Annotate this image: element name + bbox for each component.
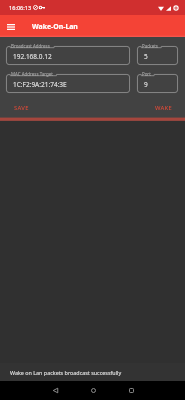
button[interactable]: Wake on Lan packets broadcast successful… [0, 363, 185, 381]
button[interactable]: Open navigation menu [0, 16, 22, 37]
staticText: 5 [144, 52, 148, 61]
button[interactable]: Home [81, 381, 105, 400]
staticText: Wake on Lan packets broadcast successful… [10, 369, 122, 376]
button[interactable]: Recent apps [119, 381, 143, 400]
staticText: WAKE [155, 104, 173, 112]
button[interactable]: 1C:F2:9A:21:74:3E [6, 74, 130, 93]
staticText: 9 [144, 80, 148, 89]
staticText: Port [142, 71, 151, 77]
staticText: SAVE [14, 104, 29, 112]
staticText: Wake-On-Lan [32, 22, 78, 31]
button[interactable]: 9 [137, 74, 178, 93]
button[interactable]: WAKE [149, 101, 179, 115]
button[interactable]: SAVE [8, 101, 35, 115]
staticText: 1C:F2:9A:21:74:3E [13, 80, 67, 89]
staticText: 192.168.0.12 [13, 52, 52, 61]
staticText: Broadcast Address [11, 43, 50, 49]
staticText: Packets [142, 43, 158, 49]
button[interactable]: Back [43, 381, 67, 400]
staticText: 16:06:13 [9, 4, 32, 12]
button[interactable]: 192.168.0.12 [6, 46, 130, 65]
staticText: MAC Address Target [11, 71, 53, 77]
button[interactable]: 5 [137, 46, 178, 65]
